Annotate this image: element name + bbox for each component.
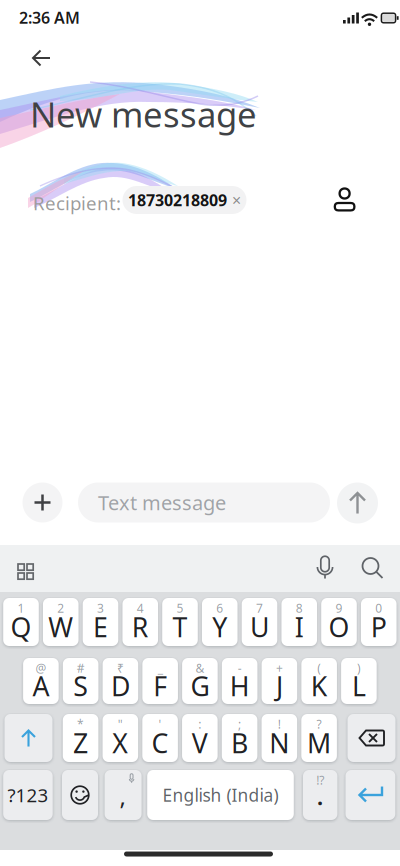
button[interactable]: Period (303, 770, 337, 820)
staticText: ₹ (117, 660, 124, 676)
button[interactable]: 9 (321, 598, 357, 646)
button[interactable]: 1 (3, 598, 39, 646)
staticText: F (153, 668, 167, 704)
staticText: - (238, 660, 242, 676)
button[interactable]: Send (337, 482, 378, 523)
button[interactable]: Voice input (308, 552, 341, 585)
button[interactable]: Comma (105, 770, 142, 820)
staticText: D (111, 668, 130, 704)
staticText: 9 (335, 600, 342, 616)
staticText: J (276, 668, 283, 704)
staticText: C (152, 725, 169, 761)
staticText: O (328, 609, 349, 645)
staticText: I (295, 609, 304, 645)
button[interactable]: ! (262, 714, 297, 762)
staticText: Recipient: (33, 191, 121, 215)
button[interactable]: 6 (202, 598, 237, 646)
button[interactable]: 3 (83, 598, 118, 646)
staticText: L (352, 668, 366, 704)
staticText: Text message (98, 489, 226, 516)
staticText: _ (158, 660, 163, 676)
staticText: 1 (17, 600, 24, 616)
button[interactable]: # (63, 658, 98, 704)
button[interactable]: + (262, 658, 297, 704)
staticText: ( (317, 660, 321, 676)
button[interactable]: Choose contact (323, 177, 367, 221)
button[interactable]: Emoji (62, 770, 98, 820)
staticText: A (32, 668, 49, 704)
button[interactable]: : (182, 714, 218, 762)
staticText: ! (278, 716, 281, 732)
button[interactable]: ? (301, 714, 337, 762)
staticText: S (73, 668, 88, 704)
staticText: , (120, 780, 126, 812)
button[interactable]: Back (21, 38, 61, 78)
button[interactable]: - (222, 658, 257, 704)
staticText: 2 (57, 600, 64, 616)
staticText: !? (316, 772, 324, 788)
button[interactable]: Keyboard options (9, 555, 42, 588)
staticText: + (276, 660, 283, 676)
button[interactable]: & (182, 658, 218, 704)
staticText: W (48, 609, 73, 645)
staticText: 18730218809 (128, 189, 227, 211)
button[interactable]: Symbols (3, 770, 53, 820)
button[interactable]: 7 (242, 598, 277, 646)
staticText: ?123 (7, 783, 48, 807)
staticText: 4 (137, 600, 144, 616)
staticText: K (311, 668, 328, 704)
button[interactable]: ' (142, 714, 178, 762)
button[interactable]: 8 (281, 598, 317, 646)
button[interactable]: ( (301, 658, 337, 704)
button[interactable]: ; (222, 714, 257, 762)
button[interactable]: * (63, 714, 98, 762)
staticText: ' (159, 716, 162, 732)
staticText: 5 (176, 600, 183, 616)
button[interactable]: 0 (361, 598, 396, 646)
staticText: X (112, 725, 128, 761)
staticText: Z (73, 725, 88, 761)
staticText: N (269, 725, 289, 761)
staticText: Y (212, 609, 227, 645)
button[interactable]: 5 (162, 598, 198, 646)
button[interactable]: Enter (345, 770, 395, 820)
staticText: 8 (296, 600, 303, 616)
staticText: R (132, 609, 149, 645)
staticText: & (195, 660, 204, 676)
staticText: @ (35, 660, 46, 676)
staticText: . (317, 780, 324, 812)
button[interactable]: _ (142, 658, 178, 704)
staticText: Q (10, 609, 31, 645)
staticText: English (India) (162, 783, 278, 806)
staticText: 0 (375, 600, 382, 616)
button[interactable]: Add attachment (22, 482, 62, 522)
staticText: V (192, 725, 208, 761)
staticText: ? (317, 716, 322, 732)
button[interactable]: Backspace (347, 714, 395, 762)
button[interactable]: " (102, 714, 138, 762)
button[interactable]: ₹ (103, 658, 138, 704)
button[interactable]: Space (147, 770, 294, 820)
button[interactable]: 2 (43, 598, 79, 646)
staticText: ; (238, 716, 241, 732)
button[interactable]: Text message (78, 482, 330, 522)
button[interactable]: 4 (122, 598, 158, 646)
button[interactable]: Search (356, 551, 389, 584)
button[interactable]: ) (341, 658, 377, 704)
staticText: T (172, 609, 187, 645)
staticText: 7 (256, 600, 263, 616)
staticText: G (190, 668, 209, 704)
staticText: 2:36 AM (19, 7, 80, 28)
staticText: × (232, 189, 241, 211)
staticText: P (371, 609, 387, 645)
staticText: * (77, 716, 84, 732)
button[interactable]: @ (23, 658, 59, 704)
button[interactable]: 18730218809 (122, 186, 246, 214)
staticText: H (230, 668, 250, 704)
staticText: New message (30, 91, 257, 137)
staticText: B (231, 725, 248, 761)
staticText: U (250, 609, 269, 645)
button[interactable]: Shift (4, 714, 52, 762)
staticText: M (307, 725, 331, 761)
staticText: # (77, 660, 85, 676)
